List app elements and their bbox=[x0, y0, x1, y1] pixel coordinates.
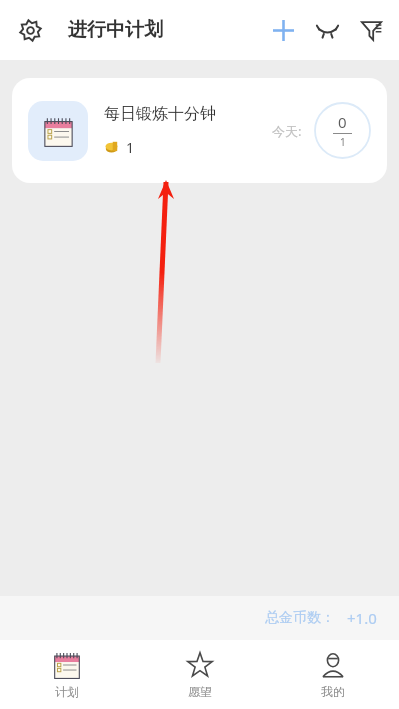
staticText: 0 bbox=[338, 112, 347, 132]
staticText: 愿望 bbox=[188, 684, 212, 699]
button[interactable]: 每日锻炼十分钟 bbox=[12, 78, 387, 183]
staticText: 1 bbox=[340, 135, 346, 149]
button[interactable]: Filter bbox=[349, 8, 393, 52]
staticText: 我的 bbox=[321, 684, 345, 699]
staticText: 进行中计划 bbox=[68, 18, 163, 42]
button[interactable]: Hide completed plans bbox=[305, 8, 349, 52]
staticText: +1.0 bbox=[347, 608, 377, 628]
staticText: 1 bbox=[126, 138, 135, 157]
button[interactable]: 计划 bbox=[0, 640, 133, 709]
button[interactable]: Add plan bbox=[261, 8, 305, 52]
staticText: 每日锻炼十分钟 bbox=[104, 104, 216, 124]
staticText: 总金币数： bbox=[265, 609, 335, 627]
button[interactable]: 愿望 bbox=[133, 640, 266, 709]
staticText: 计划 bbox=[55, 684, 79, 699]
button[interactable]: Settings bbox=[8, 8, 52, 52]
staticText: 今天: bbox=[272, 122, 302, 140]
button[interactable]: 我的 bbox=[266, 640, 399, 709]
